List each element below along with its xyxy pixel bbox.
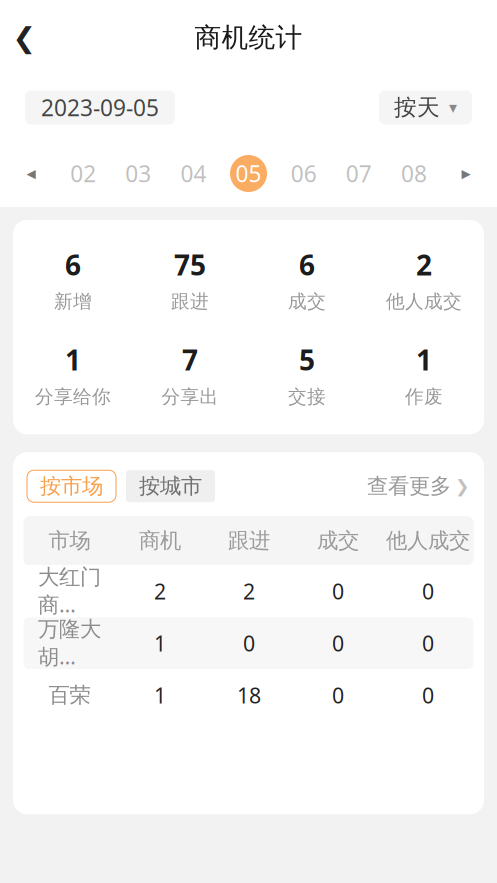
staticText: 他人成交	[386, 528, 470, 554]
staticText: 分享给你	[35, 385, 111, 408]
button[interactable]: 03	[118, 151, 158, 195]
staticText: 0	[332, 629, 344, 657]
staticText: 02	[70, 158, 96, 188]
staticText: 分享出	[161, 385, 218, 408]
staticText: 1	[416, 341, 432, 378]
button[interactable]: 08	[394, 151, 434, 195]
staticText: 万隆大胡…	[38, 616, 101, 670]
staticText: 1	[154, 629, 166, 657]
button[interactable]: 按市场	[27, 470, 116, 502]
staticText: 成交	[288, 290, 326, 313]
staticText: 作废	[405, 385, 443, 408]
staticText: 2023-09-05	[41, 92, 159, 122]
button[interactable]: 05	[228, 151, 268, 195]
staticText: 0	[332, 577, 344, 605]
staticText: 查看更多	[367, 473, 451, 499]
button[interactable]: 2023-09-05	[25, 90, 175, 124]
staticText: 0	[332, 681, 344, 709]
staticText: 跟进	[171, 290, 209, 313]
button[interactable]: 上一周	[14, 151, 48, 195]
staticText: 2	[416, 246, 432, 283]
staticText: 1	[154, 681, 166, 709]
staticText: ❯	[455, 476, 470, 496]
staticText: 05	[235, 158, 261, 188]
button[interactable]: 查看更多	[367, 470, 470, 502]
staticText: 百荣	[48, 682, 90, 708]
staticText: 按市场	[40, 473, 103, 499]
staticText: ◀	[26, 167, 35, 180]
staticText: 6	[299, 246, 315, 283]
staticText: 6	[65, 246, 81, 283]
staticText: 新增	[54, 290, 92, 313]
staticText: ❮	[12, 22, 35, 53]
button[interactable]: 按天	[379, 90, 472, 124]
staticText: 1	[65, 341, 81, 378]
button[interactable]: 下一周	[449, 151, 483, 195]
staticText: 2	[154, 577, 166, 605]
staticText: 0	[422, 681, 434, 709]
staticText: 按城市	[139, 473, 202, 499]
staticText: 18	[237, 681, 261, 709]
staticText: 08	[401, 158, 427, 188]
staticText: 75	[174, 246, 206, 283]
staticText: 0	[422, 629, 434, 657]
staticText: 2	[243, 577, 255, 605]
staticText: 5	[299, 341, 315, 378]
staticText: 成交	[317, 528, 359, 554]
staticText: ▾	[449, 98, 457, 117]
staticText: 0	[243, 629, 255, 657]
button[interactable]: 06	[284, 151, 324, 195]
staticText: 04	[180, 158, 206, 188]
button[interactable]: 02	[63, 151, 103, 195]
staticText: 7	[182, 341, 198, 378]
button[interactable]: 07	[339, 151, 379, 195]
staticText: 市场	[48, 528, 90, 554]
staticText: 商机统计	[194, 21, 302, 54]
staticText: 商机	[139, 528, 181, 554]
staticText: 跟进	[228, 528, 270, 554]
button[interactable]: 按城市	[126, 470, 215, 502]
button[interactable]: 04	[173, 151, 213, 195]
staticText: 07	[346, 158, 372, 188]
staticText: 03	[125, 158, 151, 188]
staticText: 0	[422, 577, 434, 605]
staticText: ▶	[461, 167, 470, 180]
button[interactable]: 返回	[0, 12, 48, 62]
staticText: 按天	[394, 94, 440, 121]
staticText: 他人成交	[386, 290, 462, 313]
staticText: 交接	[288, 385, 326, 408]
staticText: 大红门商…	[38, 564, 101, 618]
staticText: 06	[291, 158, 317, 188]
